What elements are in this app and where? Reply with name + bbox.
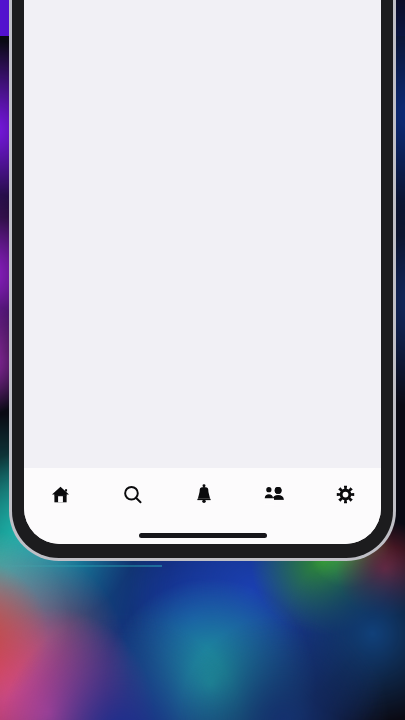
button[interactable]: Settings [310, 468, 381, 520]
button[interactable]: Home [24, 468, 96, 520]
button[interactable]: Notifications [168, 468, 239, 520]
button[interactable]: People [239, 468, 310, 520]
button[interactable]: Search [96, 468, 168, 520]
